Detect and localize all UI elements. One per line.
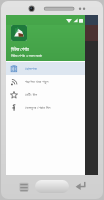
button[interactable]: পছন্দের খবর পড়ুন (6, 75, 85, 88)
staticText: হোমপেজ (25, 67, 37, 71)
staticText: রেটিং দিন (25, 92, 38, 98)
button[interactable]: রেটিং দিন (6, 88, 85, 101)
button[interactable]: Profile photo (6, 15, 85, 61)
staticText: পছন্দের খবর পড়ুন (25, 79, 49, 85)
button[interactable]: Back (75, 180, 88, 193)
staticText: ফেসবুকে শেয়ার দিন (25, 105, 51, 111)
button[interactable]: হোমপেজ (6, 62, 85, 75)
button[interactable]: Home (35, 180, 69, 193)
button[interactable]: ফেসবুকে শেয়ার দিন (6, 101, 85, 114)
button[interactable]: Menu (18, 181, 30, 193)
staticText: নিউজ পেপার (11, 46, 29, 52)
button[interactable]: Profile photo (11, 25, 27, 41)
staticText: নিউজ পেপার এ সকল সংবাদ (11, 53, 42, 58)
